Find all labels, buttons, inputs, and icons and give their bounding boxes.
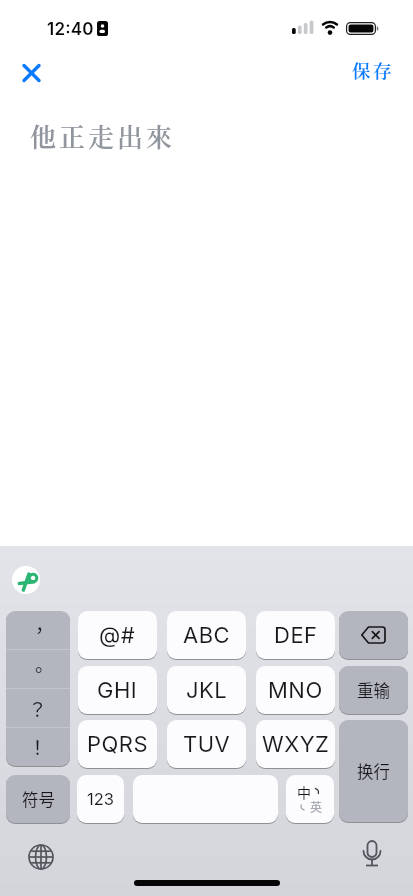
staticText: GHI [97,677,138,704]
staticText: 123 [87,789,114,809]
staticText: @# [99,622,136,649]
button[interactable]: 重输 [339,666,408,714]
staticText: 12:40 [47,19,94,40]
staticText: DEF [274,622,318,649]
button[interactable]: GHI [78,666,157,714]
button[interactable]: 中 [286,775,334,823]
staticText: ， [35,611,55,638]
staticText: 中 [297,782,311,802]
button[interactable]: @# [78,611,157,659]
staticText: 。 [35,650,55,678]
staticText: PQRS [87,731,149,758]
button[interactable]: 123 [77,775,124,823]
button[interactable] [28,844,54,870]
button[interactable]: 换行 [339,720,408,822]
staticText: TUV [183,731,231,758]
staticText: 他正走出來 [30,117,176,154]
staticText: ？ [28,695,48,723]
button[interactable]: ， [6,611,70,766]
staticText: ！ [28,733,48,761]
staticText: ABC [183,622,231,649]
button[interactable] [339,611,408,659]
button[interactable] [360,840,384,870]
staticText: 英 [310,798,323,815]
button[interactable]: PQRS [78,720,157,768]
button[interactable]: ABC [167,611,246,659]
button[interactable]: JKL [167,666,246,714]
staticText: JKL [186,677,228,704]
button[interactable] [133,775,278,823]
button[interactable] [16,58,46,88]
button[interactable]: WXYZ [256,720,335,768]
button[interactable]: MNO [256,666,335,714]
button[interactable]: TUV [167,720,246,768]
button[interactable]: DEF [256,611,335,659]
button[interactable]: 符号 [6,775,70,823]
staticText: 符号 [22,787,55,811]
staticText: 保存 [352,57,395,84]
button[interactable]: 保存 [352,57,395,84]
staticText: 重输 [357,678,390,702]
button[interactable] [12,566,40,594]
staticText: 换行 [357,759,390,783]
staticText: MNO [268,677,323,704]
staticText: WXYZ [262,731,330,758]
